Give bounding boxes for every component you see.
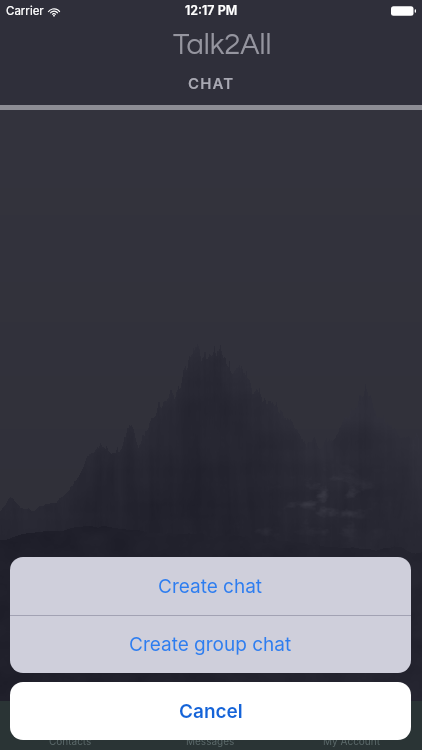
staticText: Carrier [6, 4, 44, 18]
button[interactable]: My Account [281, 701, 422, 750]
staticText: Talk2All [173, 30, 272, 60]
staticText: Cancel [179, 700, 243, 723]
button[interactable]: Create group chat [10, 616, 411, 673]
other: Battery full [391, 5, 416, 17]
button[interactable]: Create chat [10, 557, 411, 615]
staticText: Contacts [49, 735, 92, 747]
button[interactable]: CHAT [0, 63, 422, 105]
staticText: 12:17 PM [185, 3, 238, 18]
staticText: Create chat [158, 575, 263, 598]
staticText: Create group chat [129, 633, 292, 656]
button[interactable]: Contacts [0, 701, 140, 750]
other: Wi-Fi signal [48, 7, 60, 16]
staticText: My Account [323, 735, 380, 747]
button[interactable]: Messages [140, 701, 281, 750]
button[interactable]: Cancel [10, 682, 411, 740]
staticText: CHAT [188, 74, 235, 92]
staticText: Messages [186, 735, 235, 747]
